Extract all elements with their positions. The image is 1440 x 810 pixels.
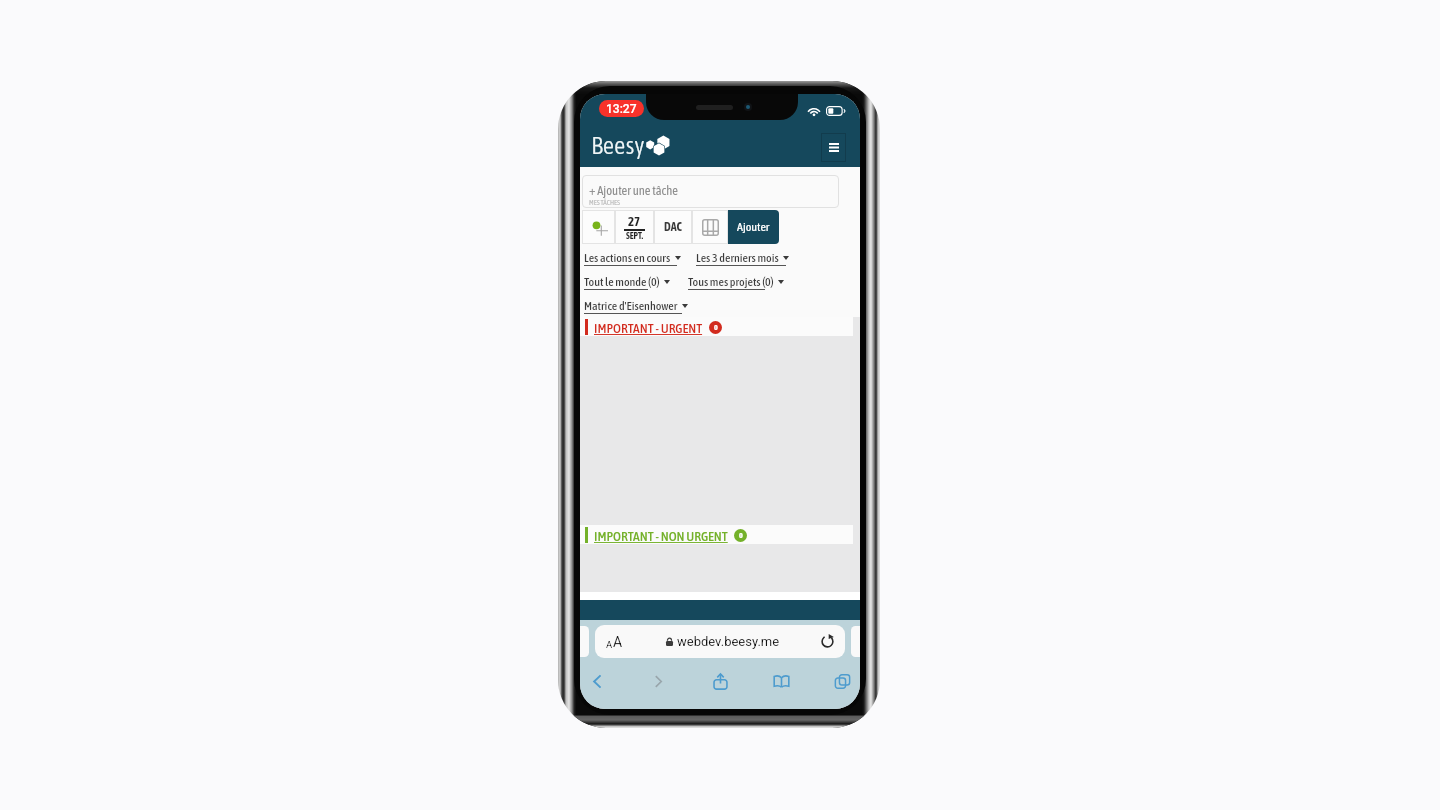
staticText: Les 3 derniers mois	[696, 251, 779, 265]
staticText: IMPORTANT - NON URGENT	[594, 528, 728, 543]
staticText: + Ajouter une tâche	[589, 183, 678, 197]
staticText: 0	[714, 323, 718, 332]
staticText: webdev.beesy.me	[677, 634, 780, 649]
button[interactable]: Back	[583, 667, 611, 695]
button[interactable]: Tout le monde (0)	[584, 275, 670, 290]
staticText: MES TÂCHES	[589, 198, 620, 206]
button[interactable]: Menu	[821, 133, 846, 162]
button[interactable]: Statut	[582, 210, 615, 244]
staticText: Les actions en cours	[584, 251, 671, 265]
button[interactable]: DAC	[654, 210, 692, 244]
staticText: IMPORTANT - URGENT	[594, 320, 703, 335]
button[interactable]: Les 3 derniers mois	[696, 251, 789, 266]
staticText: Matrice d'Eisenhower	[584, 299, 678, 313]
button[interactable]: A	[595, 625, 845, 658]
staticText: Tout le monde (0)	[584, 275, 660, 289]
staticText: A	[606, 639, 613, 650]
staticText: 0	[739, 531, 743, 540]
staticText: SEPT.	[626, 231, 644, 241]
staticText: 13:27	[606, 102, 637, 116]
button[interactable]: IMPORTANT - NON URGENT	[580, 525, 853, 544]
button[interactable]: IMPORTANT - URGENT	[580, 317, 853, 336]
staticText: Tous mes projets (0)	[688, 275, 774, 289]
staticText: A	[613, 634, 623, 650]
staticText: 27	[628, 214, 641, 229]
staticText: Beesy	[591, 131, 645, 160]
staticText: Ajouter	[737, 220, 770, 234]
button[interactable]: Les actions en cours	[584, 251, 681, 266]
button[interactable]: Projet	[692, 210, 728, 244]
button[interactable]: Tabs	[828, 667, 856, 695]
button[interactable]: Forward	[644, 667, 672, 695]
button[interactable]: 27	[615, 210, 654, 244]
button[interactable]: + Ajouter une tâche	[582, 175, 839, 208]
button[interactable]: Share	[706, 667, 734, 695]
button[interactable]: Matrice d'Eisenhower	[584, 299, 688, 314]
button[interactable]: Bookmarks	[767, 667, 795, 695]
button[interactable]: Tous mes projets (0)	[688, 275, 784, 290]
staticText: DAC	[664, 220, 683, 234]
button[interactable]: Ajouter	[728, 210, 779, 244]
button[interactable]: Reload	[820, 634, 835, 649]
